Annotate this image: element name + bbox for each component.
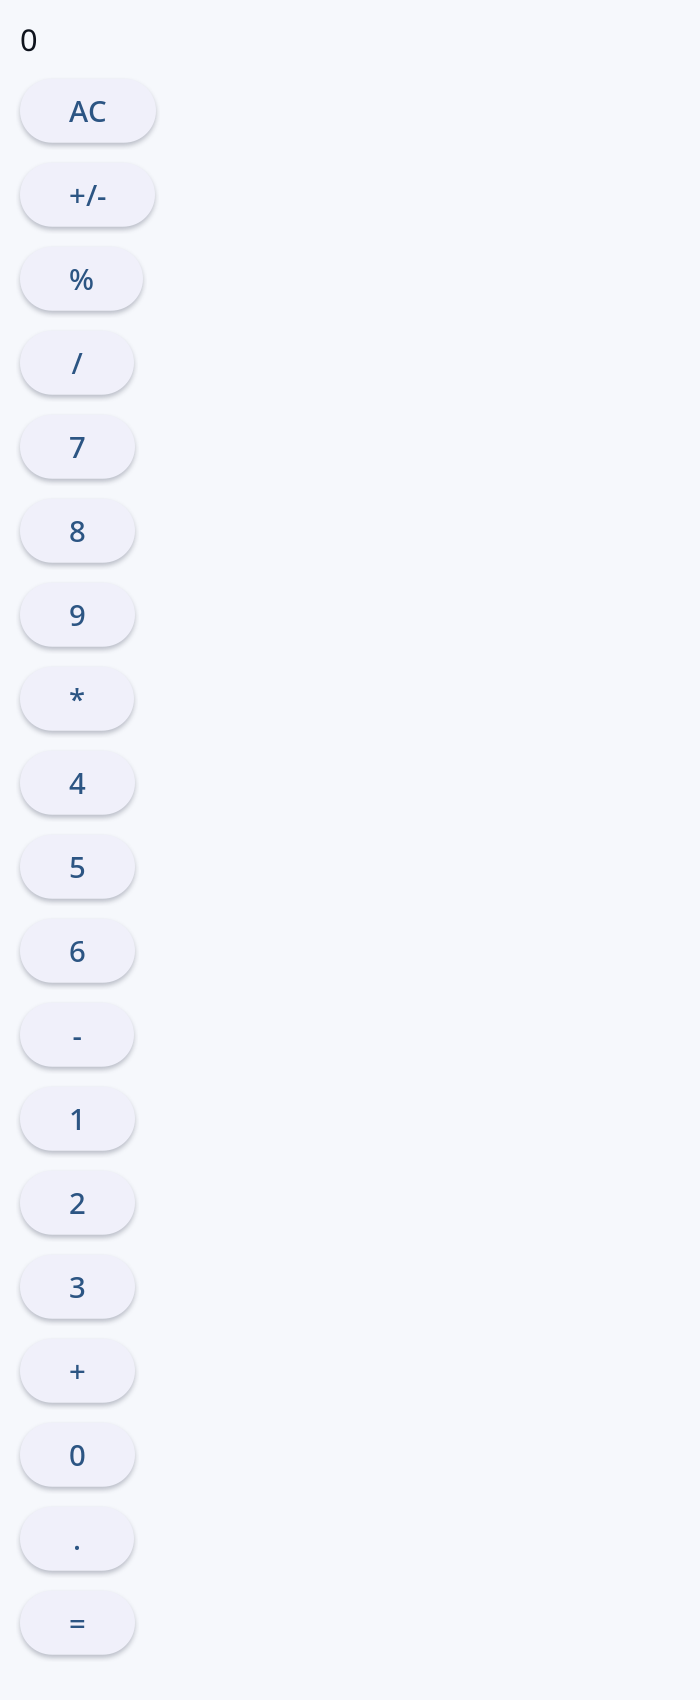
staticText: 0 <box>20 19 38 60</box>
button[interactable]: % <box>20 247 143 311</box>
button[interactable]: 9 <box>20 583 135 647</box>
button[interactable]: / <box>20 331 134 395</box>
button[interactable]: 7 <box>20 415 135 479</box>
button[interactable]: - <box>20 1003 134 1067</box>
button[interactable]: + <box>20 1339 135 1403</box>
button[interactable]: 1 <box>20 1087 135 1151</box>
button[interactable]: . <box>20 1507 134 1571</box>
button[interactable]: * <box>20 667 134 731</box>
button[interactable]: 8 <box>20 499 135 563</box>
staticText: / <box>71 343 82 382</box>
staticText: * <box>69 679 85 718</box>
staticText: 3 <box>69 1267 86 1306</box>
staticText: 8 <box>69 511 86 550</box>
staticText: % <box>69 259 94 298</box>
staticText: AC <box>69 91 107 130</box>
staticText: . <box>73 1519 81 1558</box>
staticText: = <box>69 1603 86 1642</box>
staticText: 6 <box>69 931 86 970</box>
staticText: 2 <box>69 1183 86 1222</box>
button[interactable]: 6 <box>20 919 135 983</box>
staticText: 5 <box>69 847 86 886</box>
staticText: 7 <box>69 427 86 466</box>
staticText: 4 <box>69 763 86 802</box>
staticText: 0 <box>69 1435 86 1474</box>
button[interactable]: = <box>20 1591 135 1655</box>
button[interactable]: 3 <box>20 1255 135 1319</box>
button[interactable]: 4 <box>20 751 135 815</box>
staticText: 1 <box>69 1099 86 1138</box>
button[interactable]: +/- <box>20 163 155 227</box>
staticText: 9 <box>69 595 86 634</box>
staticText: +/- <box>69 175 106 214</box>
staticText: + <box>69 1351 86 1390</box>
button[interactable]: 0 <box>20 1423 135 1487</box>
button[interactable]: 2 <box>20 1171 135 1235</box>
staticText: - <box>72 1015 81 1054</box>
button[interactable]: AC <box>20 79 156 143</box>
button[interactable]: 5 <box>20 835 135 899</box>
